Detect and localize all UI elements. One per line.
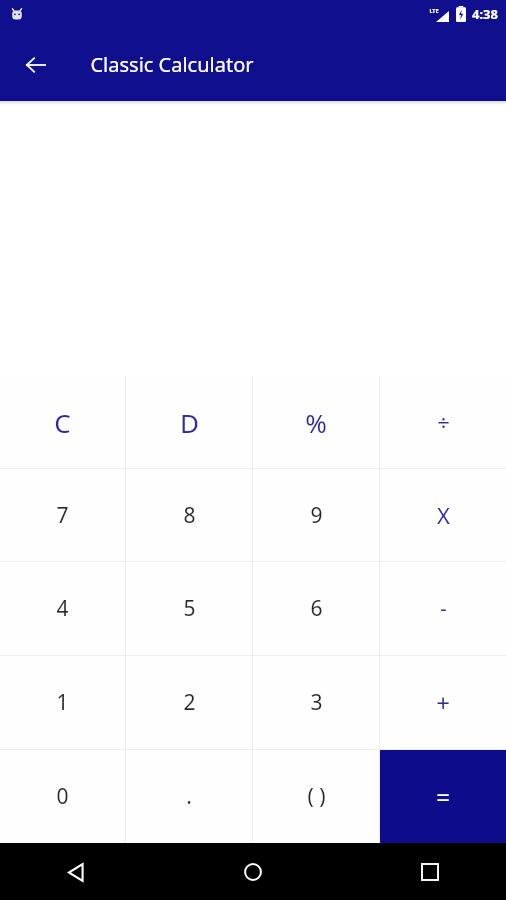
- staticText: 2: [183, 688, 196, 717]
- staticText: 7: [56, 501, 69, 530]
- staticText: +: [436, 686, 450, 719]
- button[interactable]: Home: [231, 850, 275, 894]
- staticText: C: [54, 405, 71, 440]
- button[interactable]: +: [380, 656, 506, 749]
- staticText: X: [437, 500, 450, 530]
- staticText: Classic Calculator: [90, 51, 254, 78]
- staticText: 6: [310, 594, 323, 623]
- staticText: 5: [183, 594, 196, 623]
- staticText: %: [305, 405, 327, 440]
- staticText: 9: [310, 501, 323, 530]
- button[interactable]: Back: [54, 850, 98, 894]
- staticText: 8: [183, 501, 196, 530]
- staticText: -: [440, 595, 447, 622]
- button[interactable]: 8: [126, 469, 252, 561]
- button[interactable]: 7: [0, 469, 125, 561]
- button[interactable]: X: [380, 469, 506, 561]
- staticText: D: [180, 405, 199, 440]
- button[interactable]: 5: [126, 562, 252, 655]
- staticText: 4:38: [472, 5, 498, 23]
- button[interactable]: =: [380, 750, 506, 843]
- staticText: 0: [56, 782, 69, 811]
- button[interactable]: 4: [0, 562, 125, 655]
- button[interactable]: 0: [0, 750, 125, 843]
- button[interactable]: 3: [253, 656, 379, 749]
- staticText: ( ): [307, 782, 326, 811]
- button[interactable]: ÷: [380, 376, 506, 468]
- button[interactable]: Recents: [408, 850, 452, 894]
- button[interactable]: ( ): [253, 750, 379, 843]
- staticText: =: [436, 780, 450, 813]
- button[interactable]: %: [253, 376, 379, 468]
- button[interactable]: D: [126, 376, 252, 468]
- staticText: 1: [56, 688, 69, 717]
- button[interactable]: C: [0, 376, 125, 468]
- staticText: ÷: [437, 407, 450, 437]
- button[interactable]: -: [380, 562, 506, 655]
- button[interactable]: 6: [253, 562, 379, 655]
- button[interactable]: 1: [0, 656, 125, 749]
- staticText: 4: [56, 594, 69, 623]
- button[interactable]: 2: [126, 656, 252, 749]
- staticText: .: [186, 782, 192, 811]
- staticText: 3: [310, 688, 323, 717]
- staticText: LTE: [429, 7, 439, 14]
- button[interactable]: Back: [12, 41, 60, 89]
- button[interactable]: 9: [253, 469, 379, 561]
- button[interactable]: .: [126, 750, 252, 843]
